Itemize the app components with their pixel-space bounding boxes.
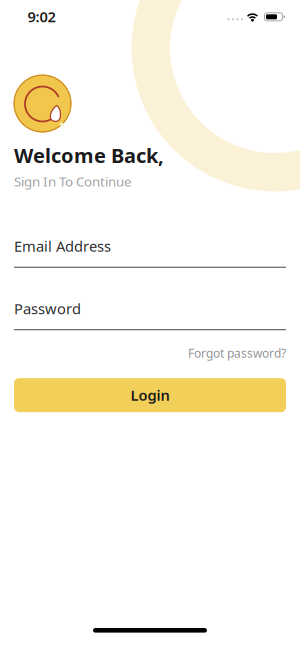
staticText: Password [14, 299, 81, 318]
button[interactable]: Login [14, 378, 286, 412]
staticText: 9:02 [27, 7, 55, 26]
staticText: Sign In To Continue [14, 173, 132, 190]
button[interactable]: Email Address [14, 236, 286, 268]
staticText: Welcome Back, [14, 142, 164, 169]
staticText: Email Address [14, 236, 111, 256]
button[interactable]: Password [14, 299, 286, 330]
button[interactable]: Forgot password? [188, 345, 286, 361]
staticText: Login [130, 385, 169, 405]
staticText: Forgot password? [188, 345, 286, 361]
